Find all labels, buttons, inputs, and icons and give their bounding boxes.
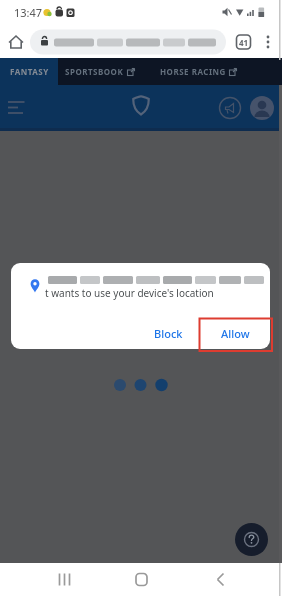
button[interactable]: Block [148,323,188,343]
button[interactable] [50,565,78,593]
staticText: SPORTSBOOK [65,66,124,77]
staticText: 13:47 [14,5,43,20]
button[interactable]: SPORTSBOOK [65,58,135,85]
staticText: Block [154,326,183,341]
button[interactable]: Allow [215,323,255,343]
staticText: FANTASY [10,66,49,77]
staticText: Allow [221,326,250,341]
button[interactable] [206,565,234,593]
staticText: t wants to use your device's location [45,286,214,300]
button[interactable]: HORSE RACING [160,58,237,85]
button[interactable] [127,565,155,593]
staticText: HORSE RACING [160,66,226,77]
button[interactable] [235,523,268,556]
button[interactable]: FANTASY [0,58,58,85]
staticText: 41 [239,37,249,48]
